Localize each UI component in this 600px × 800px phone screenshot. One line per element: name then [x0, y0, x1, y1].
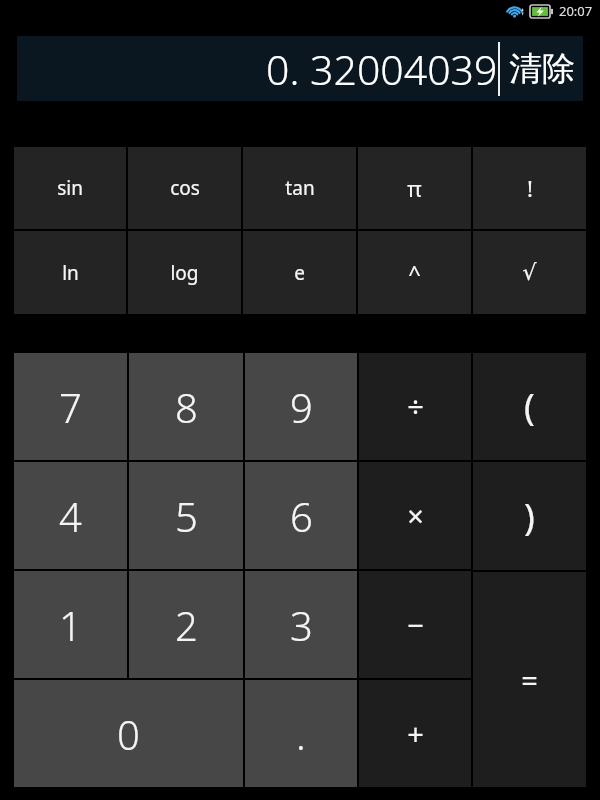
staticText: 20:07: [559, 2, 593, 20]
staticText: 3: [290, 598, 313, 652]
staticText: !: [527, 173, 533, 203]
staticText: 5: [175, 489, 198, 543]
button[interactable]: 0: [14, 680, 243, 787]
staticText: √: [522, 260, 537, 286]
staticText: cos: [170, 175, 200, 201]
staticText: +: [407, 714, 424, 753]
button[interactable]: tan: [243, 147, 356, 229]
button[interactable]: 6: [245, 462, 357, 569]
staticText: ln: [62, 260, 79, 286]
staticText: −: [407, 605, 424, 644]
button[interactable]: 8: [129, 353, 243, 460]
button[interactable]: log: [128, 231, 241, 314]
staticText: 1: [59, 598, 82, 652]
button[interactable]: 2: [129, 571, 243, 678]
button[interactable]: +: [359, 680, 471, 787]
button[interactable]: 1: [14, 571, 127, 678]
staticText: 0: [117, 707, 140, 761]
button[interactable]: ÷: [359, 353, 471, 460]
staticText: ^: [408, 258, 421, 288]
staticText: 9: [290, 380, 313, 434]
staticText: ×: [407, 496, 424, 535]
button[interactable]: cos: [128, 147, 241, 229]
other: Battery charging: [530, 5, 553, 18]
staticText: sin: [57, 175, 83, 201]
button[interactable]: ×: [359, 462, 471, 569]
staticText: ): [524, 492, 535, 541]
button[interactable]: 清除: [500, 36, 583, 101]
button[interactable]: (: [473, 353, 586, 460]
staticText: =: [521, 660, 538, 699]
button[interactable]: 3: [245, 571, 357, 678]
staticText: 0. 32004039: [266, 41, 498, 97]
staticText: 4: [59, 489, 82, 543]
button[interactable]: 5: [129, 462, 243, 569]
button[interactable]: ^: [358, 231, 471, 314]
button[interactable]: 9: [245, 353, 357, 460]
staticText: e: [294, 260, 305, 286]
button[interactable]: −: [359, 571, 471, 678]
button[interactable]: =: [473, 572, 586, 787]
staticText: 清除: [509, 48, 575, 90]
other: Wi-Fi: [506, 3, 525, 19]
staticText: .: [296, 707, 306, 761]
button[interactable]: sin: [14, 147, 126, 229]
button[interactable]: π: [358, 147, 471, 229]
staticText: π: [407, 173, 422, 203]
button[interactable]: ): [473, 462, 586, 570]
staticText: ÷: [407, 387, 424, 426]
button[interactable]: !: [473, 147, 586, 229]
staticText: 2: [175, 598, 198, 652]
button[interactable]: ln: [14, 231, 126, 314]
button[interactable]: 0. 32004039: [17, 36, 583, 101]
button[interactable]: √: [473, 231, 586, 314]
staticText: 8: [175, 380, 198, 434]
staticText: 6: [290, 489, 313, 543]
staticText: 7: [59, 380, 82, 434]
button[interactable]: 4: [14, 462, 127, 569]
button[interactable]: .: [245, 680, 357, 787]
button[interactable]: 7: [14, 353, 127, 460]
staticText: tan: [285, 175, 315, 201]
button[interactable]: e: [243, 231, 356, 314]
staticText: (: [524, 382, 535, 431]
staticText: log: [170, 260, 199, 286]
